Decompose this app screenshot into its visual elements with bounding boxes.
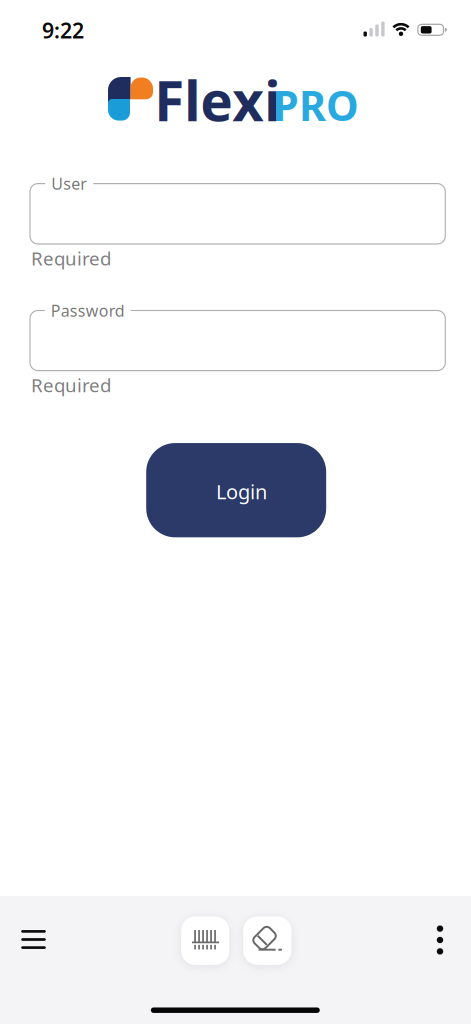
button[interactable] <box>30 184 445 244</box>
button[interactable] <box>30 310 445 371</box>
staticText: PRO <box>273 78 359 132</box>
button[interactable] <box>243 917 291 965</box>
staticText: Required <box>31 373 111 397</box>
staticText: Flexi <box>154 64 280 136</box>
staticText: Required <box>31 246 111 271</box>
button[interactable] <box>418 918 462 962</box>
staticText: Password <box>51 300 125 321</box>
button[interactable]: Login <box>146 443 326 537</box>
staticText: User <box>51 173 87 194</box>
button[interactable] <box>11 917 55 961</box>
button[interactable] <box>181 917 229 965</box>
staticText: 9:22 <box>42 16 84 44</box>
staticText: Login <box>216 478 267 505</box>
